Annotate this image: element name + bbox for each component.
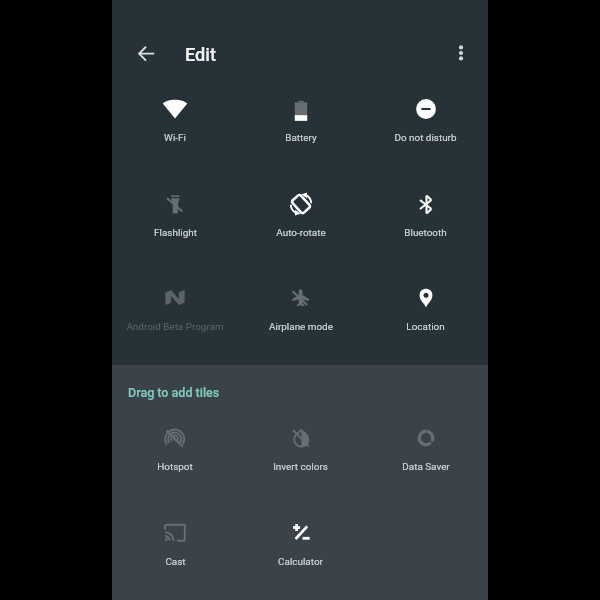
staticText: Drag to add tiles <box>128 385 220 400</box>
button[interactable]: Do not disturb <box>363 81 488 176</box>
staticText: Cast <box>165 556 186 568</box>
staticText: Bluetooth <box>404 227 447 239</box>
staticText: Calculator <box>278 556 323 568</box>
button[interactable]: Location <box>363 270 488 365</box>
staticText: Hotspot <box>157 461 193 473</box>
staticText: Location <box>406 321 445 333</box>
button[interactable]: Flashlight <box>112 176 238 271</box>
staticText: Auto-rotate <box>276 227 326 239</box>
staticText: Flashlight <box>154 227 197 239</box>
staticText: Edit <box>185 44 216 65</box>
button[interactable]: Hotspot <box>112 410 238 505</box>
staticText: Android Beta Program <box>126 321 224 333</box>
staticText: Wi-Fi <box>164 132 186 144</box>
button[interactable]: Auto-rotate <box>238 176 363 271</box>
button[interactable]: Bluetooth <box>363 176 488 271</box>
button[interactable]: Android Beta Program <box>112 270 238 365</box>
staticText: Battery <box>285 132 317 144</box>
staticText: Airplane mode <box>269 321 333 333</box>
button[interactable]: Battery <box>238 81 363 176</box>
button[interactable]: Calculator <box>238 505 363 600</box>
button[interactable]: Airplane mode <box>238 270 363 365</box>
button[interactable]: More options <box>437 29 485 77</box>
button[interactable]: Data Saver <box>363 410 488 505</box>
button[interactable]: Back <box>122 29 170 77</box>
staticText: Data Saver <box>402 461 450 473</box>
staticText: Do not disturb <box>394 132 457 144</box>
button[interactable]: Wi-Fi <box>112 81 238 176</box>
button[interactable]: Invert colors <box>238 410 363 505</box>
button[interactable]: Cast <box>112 505 238 600</box>
staticText: Invert colors <box>273 461 328 473</box>
